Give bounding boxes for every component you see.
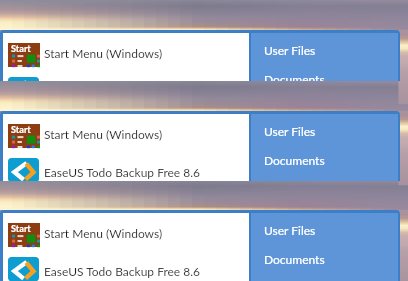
staticText: User Files bbox=[264, 43, 316, 57]
staticText: Start bbox=[11, 223, 31, 234]
button[interactable]: Documents bbox=[251, 146, 398, 169]
button[interactable]: Start Menu bbox=[0, 39, 249, 71]
staticText: Start Menu (Windows) bbox=[44, 127, 163, 141]
button[interactable]: EaseUS Todo Backup bbox=[0, 253, 249, 281]
button[interactable]: User Files bbox=[251, 36, 398, 59]
other: Start Menu bbox=[8, 223, 40, 247]
staticText: Documents bbox=[264, 252, 325, 266]
button[interactable]: User Files bbox=[251, 117, 398, 140]
other: EaseUS Todo Backup bbox=[8, 257, 39, 281]
staticText: EaseUS Todo Backup Free 8.6 bbox=[44, 165, 201, 179]
staticText: Documents bbox=[264, 72, 325, 81]
staticText: User Files bbox=[264, 223, 316, 237]
other: EaseUS Todo Backup bbox=[8, 158, 39, 181]
staticText: Documents bbox=[264, 153, 325, 167]
other: Start Menu bbox=[8, 43, 40, 67]
staticText: Start bbox=[11, 43, 31, 54]
button[interactable]: Documents bbox=[251, 65, 398, 81]
button[interactable]: Start Menu bbox=[0, 120, 249, 152]
button[interactable]: Start Menu bbox=[0, 219, 249, 251]
staticText: Start Menu (Windows) bbox=[44, 226, 163, 240]
staticText: Start Menu (Windows) bbox=[44, 46, 163, 60]
other: EaseUS Todo Backup bbox=[8, 77, 39, 81]
other: Start Menu bbox=[8, 124, 40, 148]
button[interactable]: Documents bbox=[251, 245, 398, 268]
button[interactable]: EaseUS Todo Backup bbox=[0, 73, 249, 81]
button[interactable]: EaseUS Todo Backup bbox=[0, 154, 249, 181]
staticText: Start bbox=[11, 124, 31, 135]
button[interactable]: User Files bbox=[251, 216, 398, 239]
staticText: User Files bbox=[264, 124, 316, 138]
staticText: EaseUS Todo Backup Free 8.6 bbox=[44, 264, 201, 278]
